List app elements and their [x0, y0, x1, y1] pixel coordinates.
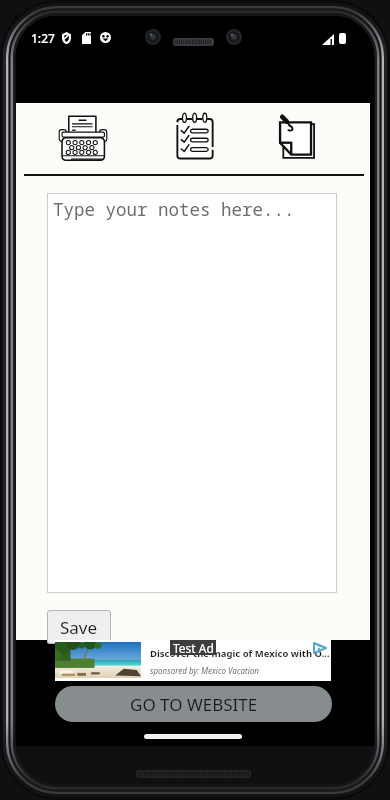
staticText: Test Ad: [173, 640, 214, 655]
other: Ad choices: [313, 642, 327, 654]
staticText: sponsored by: Mexico Vacation: [150, 665, 259, 676]
button[interactable]: Checklist: [168, 109, 220, 163]
button[interactable]: GO TO WEBSITE: [55, 686, 332, 722]
staticText: Type your notes here...: [53, 197, 295, 221]
staticText: Discover the magic of Mexico with O...: [150, 647, 330, 660]
button[interactable]: Discover the magic of Mexico with O...: [55, 640, 331, 681]
button[interactable]: Typewriter notes: [55, 111, 111, 166]
staticText: 1:27: [31, 30, 55, 46]
button[interactable]: Type your notes here...: [47, 193, 337, 593]
button[interactable]: Sticky note: [270, 113, 323, 165]
button[interactable]: Save: [47, 610, 111, 644]
staticText: Save: [60, 616, 98, 639]
staticText: GO TO WEBSITE: [130, 693, 258, 716]
